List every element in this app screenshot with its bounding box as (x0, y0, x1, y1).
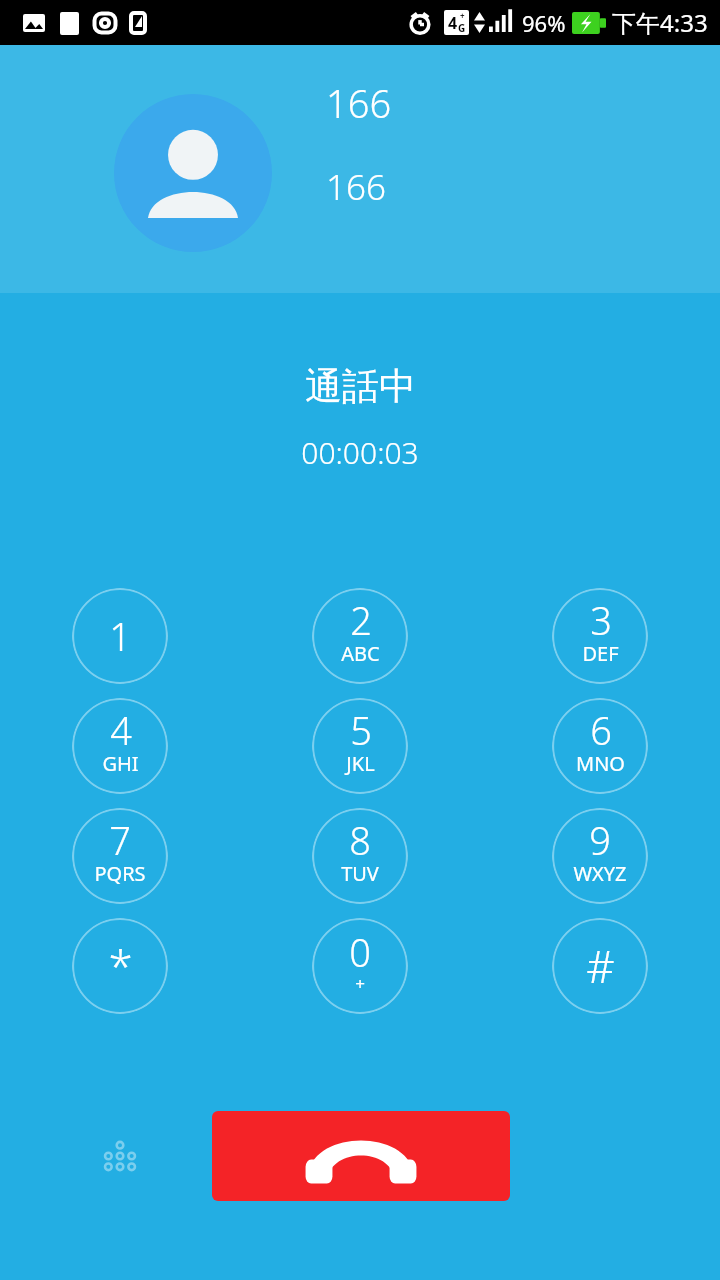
button[interactable]: Key 9 (552, 808, 648, 904)
button[interactable]: Key # (552, 918, 648, 1014)
staticText: 9 (589, 814, 611, 866)
staticText: PQRS (94, 860, 146, 887)
staticText: + (460, 10, 465, 21)
staticText: 下午4:33 (612, 6, 708, 39)
staticText: 166 (326, 163, 386, 211)
staticText: TUV (341, 860, 379, 887)
staticText: # (586, 936, 615, 996)
button[interactable]: Key 1 (72, 588, 168, 684)
staticText: 00:00:03 (301, 432, 419, 473)
button[interactable]: End call (212, 1111, 510, 1201)
staticText: 3 (590, 594, 612, 646)
button[interactable]: Key 6 (552, 698, 648, 794)
staticText: ABC (341, 640, 380, 667)
staticText: * (108, 936, 133, 996)
staticText: 166 (326, 77, 392, 129)
button[interactable]: Key 7 (72, 808, 168, 904)
button[interactable]: Contact photo (114, 94, 272, 252)
button[interactable]: Key * (72, 918, 168, 1014)
staticText: 4 (448, 12, 458, 34)
staticText: 2 (350, 594, 372, 646)
staticText: 0 (349, 926, 371, 978)
button[interactable]: Key 2 (312, 588, 408, 684)
staticText: DEF (582, 640, 619, 667)
button[interactable]: Key 4 (72, 698, 168, 794)
button[interactable]: Key 5 (312, 698, 408, 794)
staticText: 96% (522, 8, 566, 38)
staticText: 8 (349, 814, 371, 866)
staticText: 6 (590, 704, 612, 756)
button[interactable]: Key 3 (552, 588, 648, 684)
button[interactable]: Key 0 (312, 918, 408, 1014)
staticText: GHI (102, 750, 139, 777)
staticText: MNO (576, 750, 625, 777)
staticText: WXYZ (573, 860, 627, 887)
staticText: 4 (110, 704, 132, 756)
button[interactable]: Key 8 (312, 808, 408, 904)
staticText: + (355, 972, 365, 995)
staticText: 7 (109, 814, 131, 866)
button[interactable]: Keypad (88, 1124, 152, 1188)
staticText: G (458, 21, 466, 35)
staticText: 通話中 (305, 363, 416, 410)
staticText: 5 (350, 704, 372, 756)
staticText: JKL (346, 750, 375, 777)
staticText: 1 (109, 610, 131, 662)
